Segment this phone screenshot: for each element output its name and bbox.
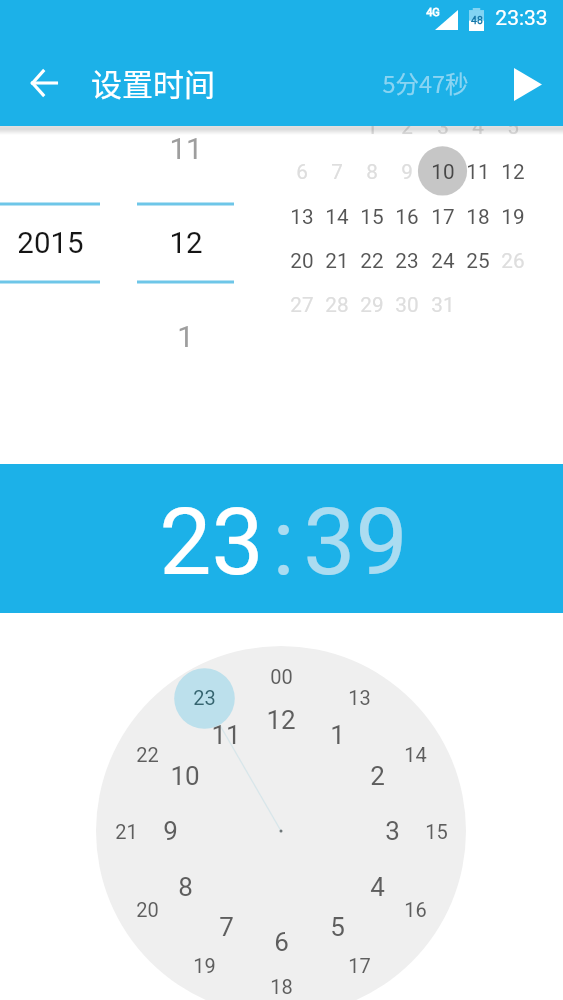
button[interactable]: 15	[348, 195, 396, 239]
staticText: 11	[169, 132, 203, 167]
staticText: 8	[366, 160, 378, 184]
button[interactable]: 22	[348, 239, 396, 283]
staticText: 7	[331, 160, 343, 184]
button[interactable]: Play	[504, 60, 552, 108]
button[interactable]: 23	[179, 679, 229, 715]
button[interactable]: 16	[383, 195, 431, 239]
button[interactable]: 00	[256, 658, 306, 694]
button[interactable]: 29	[348, 283, 396, 327]
staticText: 10	[170, 761, 200, 791]
button[interactable]: 28	[313, 283, 361, 327]
staticText: 18	[270, 975, 293, 998]
staticText: 16	[395, 205, 419, 229]
staticText: 23	[395, 249, 419, 273]
staticText: 15	[425, 820, 448, 843]
button[interactable]: 2015	[0, 223, 100, 263]
staticText: 2	[370, 761, 385, 791]
staticText: 5	[330, 912, 345, 942]
button[interactable]: 10	[419, 150, 467, 194]
staticText: 1	[366, 126, 378, 139]
staticText: 1	[330, 720, 345, 750]
staticText: 设置时间	[91, 60, 215, 102]
button[interactable]: 17	[419, 195, 467, 239]
staticText: 4	[370, 872, 385, 902]
staticText: 22	[360, 249, 384, 273]
button[interactable]: 31	[419, 283, 467, 327]
button[interactable]: 16	[390, 891, 440, 927]
button[interactable]: 7	[201, 907, 251, 947]
staticText: 13	[290, 205, 314, 229]
button[interactable]: 6	[256, 922, 306, 962]
button[interactable]: 2	[352, 756, 402, 796]
button[interactable]: 11	[454, 150, 502, 194]
staticText: 20	[290, 249, 314, 273]
staticText: 19	[193, 954, 216, 977]
staticText: 17	[431, 205, 455, 229]
staticText: 29	[360, 293, 384, 317]
staticText: 23:33	[495, 6, 548, 31]
button[interactable]: 21	[313, 239, 361, 283]
staticText: 16	[404, 898, 427, 921]
button[interactable]: 5分47秒	[382, 63, 469, 103]
button[interactable]: 12	[256, 700, 306, 740]
button[interactable]: 20	[278, 239, 326, 283]
button[interactable]: 17	[334, 947, 384, 983]
button[interactable]: 13	[334, 679, 384, 715]
button[interactable]: 2	[383, 126, 431, 149]
button[interactable]: 1	[312, 715, 362, 755]
staticText: 9	[401, 160, 413, 184]
button[interactable]: 15	[411, 813, 461, 849]
button[interactable]: 19	[179, 947, 229, 983]
button[interactable]: 30	[383, 283, 431, 327]
staticText: 13	[348, 686, 371, 709]
button[interactable]: 11	[201, 715, 251, 755]
staticText: 2015	[17, 226, 84, 261]
button[interactable]: 19	[489, 195, 537, 239]
button[interactable]: 12	[137, 223, 234, 263]
button[interactable]: 5	[489, 126, 537, 149]
button[interactable]: 10	[160, 756, 210, 796]
button[interactable]: 13	[278, 195, 326, 239]
button[interactable]: 9	[383, 150, 431, 194]
button[interactable]: 5	[312, 907, 362, 947]
button[interactable]: 1	[348, 126, 396, 149]
staticText: 14	[325, 205, 349, 229]
button[interactable]: 23	[383, 239, 431, 283]
button[interactable]: 3	[367, 811, 417, 851]
button[interactable]: 8	[160, 867, 210, 907]
button[interactable]: 14	[313, 195, 361, 239]
button[interactable]: 25	[454, 239, 502, 283]
staticText: 5	[507, 126, 519, 139]
button[interactable]: 14	[390, 736, 440, 772]
button[interactable]: 12	[489, 150, 537, 194]
button[interactable]: 4	[352, 867, 402, 907]
staticText: 6	[274, 927, 289, 957]
staticText: 22	[136, 743, 159, 766]
staticText: 4	[472, 126, 484, 139]
staticText: 18	[466, 205, 490, 229]
button[interactable]: 27	[278, 283, 326, 327]
button[interactable]: 22	[122, 736, 172, 772]
staticText: 5分47秒	[382, 66, 469, 100]
button[interactable]: 18	[256, 968, 306, 1000]
button[interactable]: 7	[313, 150, 361, 194]
staticText: 11	[211, 720, 241, 750]
button[interactable]: 6	[278, 150, 326, 194]
button[interactable]: Back	[20, 59, 68, 107]
staticText: 9	[163, 816, 178, 846]
button[interactable]: 20	[122, 891, 172, 927]
staticText: 00	[270, 665, 293, 688]
button[interactable]: 24	[419, 239, 467, 283]
staticText: 15	[360, 205, 384, 229]
staticText: 3	[385, 816, 400, 846]
button[interactable]: 26	[489, 239, 537, 283]
button[interactable]: 9	[145, 811, 195, 851]
staticText: 17	[348, 954, 371, 977]
button[interactable]: 3	[419, 126, 467, 149]
staticText: 7	[219, 912, 234, 942]
button[interactable]: 4	[454, 126, 502, 149]
button[interactable]: 18	[454, 195, 502, 239]
button[interactable]: 8	[348, 150, 396, 194]
staticText: 3	[437, 126, 449, 139]
button[interactable]: 21	[101, 813, 151, 849]
